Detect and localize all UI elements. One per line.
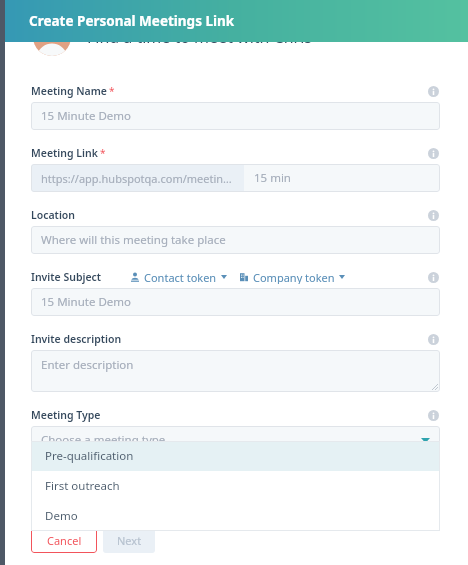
staticText: 15 min [254, 170, 291, 186]
staticText: Meeting Type [31, 408, 101, 422]
staticText: Meeting Link [31, 146, 98, 160]
staticText: Find a time to meet with Chris [87, 26, 312, 48]
button[interactable]: 15 Minute Demo [31, 288, 440, 316]
button[interactable]: https://app.hubspotqa.com/meeting… [31, 164, 244, 192]
other: More information [428, 210, 439, 221]
button[interactable]: First outreach [31, 471, 440, 501]
button[interactable]: Cancel [31, 527, 97, 553]
staticText: https://app.hubspotqa.com/meeting… [41, 171, 234, 186]
other: More information [428, 410, 439, 421]
other: More information [428, 272, 439, 283]
staticText: Create Personal Meetings Link [29, 12, 235, 30]
staticText: Invite description [31, 332, 122, 346]
staticText: First outreach [45, 478, 120, 494]
staticText: Enter description [41, 357, 134, 373]
staticText: 15 Minute Demo [41, 294, 131, 310]
staticText: 15 Minute Demo [41, 108, 131, 124]
button[interactable]: Enter description [31, 350, 440, 392]
other: More information [428, 148, 439, 159]
button[interactable]: Contact token [128, 268, 229, 286]
button[interactable]: Pre-qualification [31, 441, 440, 471]
staticText: Cancel [47, 533, 82, 548]
button[interactable]: Company token [237, 268, 347, 286]
other: More information [428, 334, 439, 345]
button[interactable]: 15 min [244, 164, 440, 192]
staticText: Company token [253, 270, 335, 284]
staticText: Pre-qualification [45, 448, 134, 464]
staticText: Invite Subject [31, 270, 102, 284]
staticText: * [100, 146, 106, 160]
staticText: Where will this meeting take place [41, 232, 226, 248]
button[interactable]: 15 Minute Demo [31, 102, 440, 130]
staticText: Demo [45, 508, 78, 524]
button[interactable]: Demo [31, 501, 440, 531]
button[interactable]: Where will this meeting take place [31, 226, 440, 254]
staticText: Meeting Name [31, 84, 107, 98]
staticText: * [109, 84, 115, 98]
button[interactable]: Choose a meeting type [31, 426, 440, 454]
staticText: Next [117, 533, 142, 548]
staticText: Choose a meeting type [41, 432, 166, 448]
staticText: Contact token [144, 270, 217, 284]
other: More information [428, 86, 439, 97]
button[interactable]: Next [103, 527, 155, 553]
staticText: Location [31, 208, 76, 222]
